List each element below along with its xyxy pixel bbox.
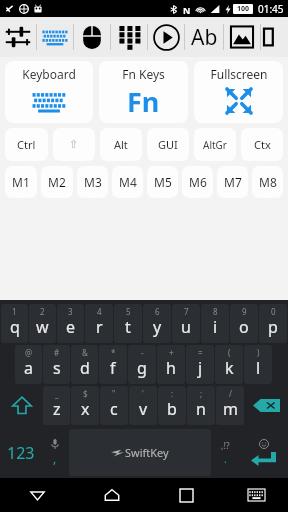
button[interactable]: Ctrl bbox=[5, 128, 48, 161]
button[interactable]: 123 bbox=[1, 429, 41, 476]
button[interactable]: 7 bbox=[172, 304, 200, 343]
staticText: b bbox=[167, 398, 177, 420]
button[interactable]: Home bbox=[74, 478, 149, 512]
button[interactable]: : bbox=[158, 386, 186, 425]
staticText: e bbox=[66, 316, 76, 338]
button[interactable]: Media play bbox=[148, 17, 184, 57]
button[interactable]: 2 bbox=[29, 304, 56, 343]
button[interactable]: M4 bbox=[112, 166, 143, 198]
button[interactable]: 1 bbox=[1, 304, 28, 343]
staticText: - bbox=[141, 347, 144, 358]
button[interactable]: M3 bbox=[77, 166, 108, 198]
button[interactable]: M7 bbox=[217, 166, 248, 198]
button[interactable]: 3 bbox=[57, 304, 84, 343]
button[interactable]: ' bbox=[129, 386, 157, 425]
button[interactable]: Keyboard bbox=[5, 61, 93, 123]
button[interactable]: M6 bbox=[182, 166, 213, 198]
button[interactable]: 0 bbox=[259, 304, 287, 343]
button[interactable]: = bbox=[186, 345, 214, 384]
button[interactable]: More bbox=[261, 17, 279, 57]
button[interactable]: AltGr bbox=[194, 128, 236, 161]
button[interactable]: # bbox=[43, 345, 70, 384]
staticText: l bbox=[256, 357, 261, 379]
button[interactable]: ( bbox=[215, 345, 243, 384]
staticText: 7 bbox=[184, 306, 189, 317]
button[interactable]: / bbox=[216, 386, 244, 425]
staticText: j bbox=[198, 357, 203, 379]
staticText: 1 bbox=[12, 306, 17, 317]
staticText: / bbox=[229, 388, 232, 399]
staticText: . bbox=[224, 451, 227, 466]
staticText: 123 bbox=[7, 442, 35, 464]
staticText: y bbox=[153, 316, 162, 338]
button[interactable]: M8 bbox=[252, 166, 283, 198]
staticText: x bbox=[81, 398, 90, 420]
button[interactable]: Recents bbox=[149, 478, 224, 512]
staticText: 5 bbox=[126, 306, 131, 317]
button[interactable]: Fn Keys bbox=[99, 61, 188, 123]
button[interactable]: Alt bbox=[100, 128, 142, 161]
button[interactable]: 9 bbox=[230, 304, 258, 343]
button[interactable]: Settings bbox=[0, 17, 36, 57]
button[interactable]: Mouse bbox=[74, 17, 110, 57]
button[interactable]: _ bbox=[43, 386, 70, 425]
button[interactable]: & bbox=[71, 345, 98, 384]
staticText: Ctrl bbox=[17, 137, 36, 152]
staticText: q bbox=[10, 316, 20, 338]
button[interactable]: Numpad bbox=[111, 17, 147, 57]
staticText: SwiftKey bbox=[125, 445, 169, 460]
button[interactable]: Ab bbox=[185, 17, 223, 57]
button[interactable]: SwiftKey bbox=[69, 429, 211, 476]
staticText: o bbox=[239, 316, 249, 338]
button[interactable]: 8 bbox=[201, 304, 229, 343]
staticText: ( bbox=[228, 347, 231, 358]
button[interactable]: GUI bbox=[147, 128, 189, 161]
staticText: Fn bbox=[127, 83, 160, 120]
button[interactable]: ,!? bbox=[212, 429, 238, 476]
button[interactable]: " bbox=[100, 386, 128, 425]
staticText: 2 bbox=[40, 306, 45, 317]
button[interactable]: ; bbox=[187, 386, 215, 425]
button[interactable]: Keyboard bbox=[37, 17, 73, 57]
button[interactable]: Shift bbox=[1, 386, 42, 425]
staticText: ) bbox=[257, 347, 260, 358]
staticText: 9 bbox=[242, 306, 247, 317]
button[interactable]: M5 bbox=[147, 166, 178, 198]
staticText: GUI bbox=[158, 137, 178, 152]
button[interactable]: - bbox=[128, 345, 156, 384]
button[interactable]: Voice input bbox=[42, 429, 68, 476]
button[interactable]: 6 bbox=[143, 304, 171, 343]
button[interactable]: M1 bbox=[5, 166, 37, 198]
staticText: i bbox=[213, 316, 218, 338]
button[interactable]: @ bbox=[15, 345, 42, 384]
button[interactable]: ⇧ bbox=[53, 128, 95, 161]
button[interactable]: Backspace bbox=[245, 386, 287, 425]
staticText: 6 bbox=[155, 306, 160, 317]
staticText: n bbox=[196, 398, 206, 420]
staticText: ⇧ bbox=[69, 138, 79, 151]
staticText: Ctx bbox=[254, 137, 271, 152]
button[interactable]: Back bbox=[0, 478, 74, 512]
staticText: M5 bbox=[154, 174, 172, 190]
staticText: g bbox=[137, 357, 147, 379]
button[interactable]: Switch keyboard bbox=[224, 478, 288, 512]
staticText: _ bbox=[55, 388, 59, 399]
staticText: h bbox=[166, 357, 176, 379]
button[interactable]: 5 bbox=[114, 304, 142, 343]
staticText: p bbox=[268, 316, 278, 338]
button[interactable]: Ctx bbox=[241, 128, 283, 161]
staticText: c bbox=[110, 398, 118, 420]
button[interactable]: + bbox=[157, 345, 185, 384]
button[interactable]: M2 bbox=[41, 166, 73, 198]
staticText: t bbox=[125, 316, 131, 338]
button[interactable]: * bbox=[99, 345, 127, 384]
button[interactable]: 4 bbox=[85, 304, 113, 343]
staticText: Ab bbox=[191, 23, 218, 52]
button[interactable]: ) bbox=[244, 345, 272, 384]
staticText: M7 bbox=[224, 174, 242, 190]
button[interactable]: $ bbox=[71, 386, 99, 425]
button[interactable]: Image bbox=[224, 17, 260, 57]
staticText: 0 bbox=[271, 306, 276, 317]
button[interactable]: Enter bbox=[239, 429, 287, 476]
button[interactable]: Fullscreen bbox=[194, 61, 283, 123]
